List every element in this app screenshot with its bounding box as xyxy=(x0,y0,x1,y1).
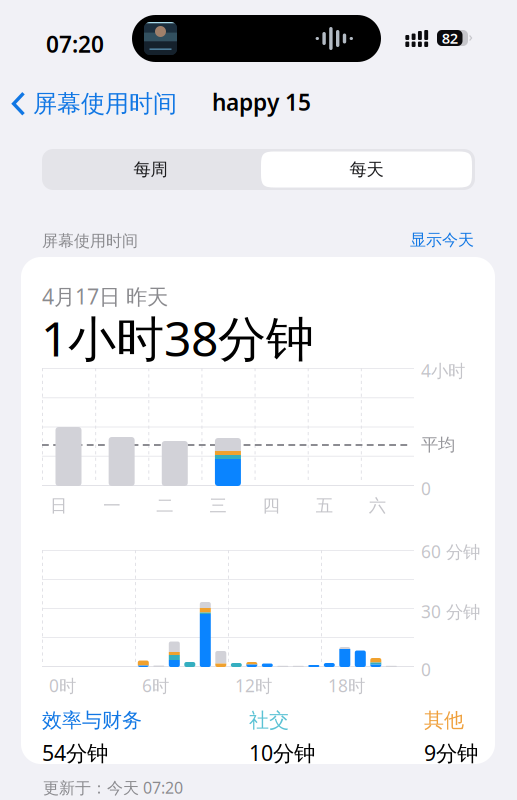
staticText: 一 xyxy=(103,495,120,516)
staticText: 社交 xyxy=(249,708,289,733)
staticText: 07:20 xyxy=(46,29,104,59)
staticText: 4小时 xyxy=(421,359,465,382)
button[interactable]: 显示今天 xyxy=(410,230,474,250)
staticText: 30 分钟 xyxy=(421,600,480,623)
staticText: 4月17日 昨天 xyxy=(42,282,168,310)
staticText: 每周 xyxy=(133,159,167,180)
staticText: 五 xyxy=(316,495,333,516)
staticText: 屏幕使用时间 xyxy=(42,231,138,251)
staticText: 1小时38分钟 xyxy=(41,306,314,370)
staticText: 0时 xyxy=(49,674,76,697)
staticText: 效率与财务 xyxy=(42,708,142,733)
staticText: 三 xyxy=(209,495,226,516)
staticText: 每天 xyxy=(349,159,383,180)
button[interactable]: 每天 xyxy=(261,151,472,187)
staticText: 显示今天 xyxy=(410,230,474,250)
staticText: 六 xyxy=(369,495,386,516)
staticText: 日 xyxy=(50,495,67,516)
staticText: 平均 xyxy=(421,434,455,455)
staticText: 18时 xyxy=(328,674,365,697)
staticText: happy 15 xyxy=(212,87,311,117)
staticText: 其他 xyxy=(424,708,464,733)
button[interactable]: 屏幕使用时间 xyxy=(11,87,177,120)
staticText: 9分钟 xyxy=(424,739,478,767)
staticText: 0 xyxy=(421,658,431,681)
staticText: 6时 xyxy=(142,674,169,697)
staticText: 屏幕使用时间 xyxy=(33,89,177,118)
staticText: 0 xyxy=(421,477,431,500)
staticText: 10分钟 xyxy=(249,739,315,767)
staticText: 60 分钟 xyxy=(421,540,480,563)
staticText: 54分钟 xyxy=(42,739,108,767)
button[interactable]: 每周 xyxy=(42,149,259,190)
staticText: 四 xyxy=(263,495,280,516)
staticText: 82 xyxy=(442,28,458,48)
staticText: 12时 xyxy=(235,674,272,697)
staticText: 二 xyxy=(156,495,173,516)
staticText: 更新于：今天 07:20 xyxy=(43,777,183,798)
